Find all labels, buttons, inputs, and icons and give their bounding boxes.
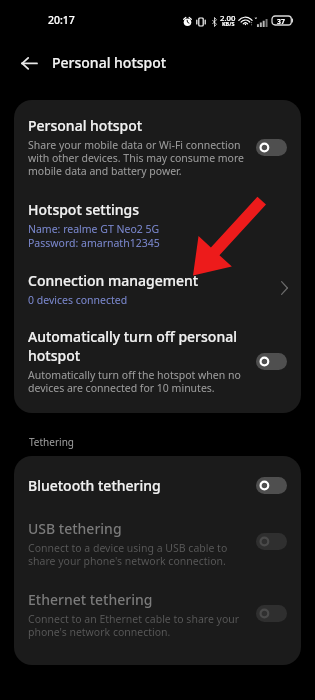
staticText: Connect to an Ethernet cable to share yo… [28, 612, 240, 639]
button[interactable] [14, 575, 301, 665]
button[interactable]: Toggle [256, 477, 287, 494]
button[interactable]: Toggle [256, 139, 287, 156]
staticText: Hotspot settings [28, 200, 140, 219]
other: Annotation arrow [0, 0, 315, 700]
staticText: Name: realme GT Neo2 5G Password: amarna… [28, 222, 160, 250]
button[interactable] [14, 100, 301, 188]
button[interactable] [14, 248, 301, 306]
button[interactable] [14, 456, 301, 505]
staticText: Bluetooth tethering [28, 476, 161, 495]
button[interactable]: Toggle [256, 533, 287, 550]
staticText: 2.00 [220, 13, 236, 24]
staticText: Ethernet tethering [28, 590, 153, 609]
staticText: KB/S [222, 20, 235, 27]
staticText: Automatically turn off the hotspot when … [28, 368, 241, 395]
staticText: Tethering [29, 435, 74, 449]
staticText: Personal hotspot [52, 53, 167, 72]
button[interactable]: Toggle [256, 353, 287, 370]
staticText: Automatically turn off personal hotspot [28, 327, 237, 365]
staticText: Personal hotspot [28, 116, 143, 135]
staticText: Connection management [28, 271, 199, 290]
button[interactable] [14, 306, 301, 413]
button[interactable]: Toggle [256, 605, 287, 622]
staticText: 20:17 [48, 13, 75, 27]
staticText: USB tethering [28, 519, 122, 538]
staticText: 37 [277, 17, 285, 26]
staticText: 0 devices connected [28, 293, 128, 307]
staticText: Connect to a device using a USB cable to… [28, 541, 228, 568]
button[interactable]: Back [10, 44, 48, 82]
button[interactable] [14, 505, 301, 575]
staticText: Share your mobile data or Wi-Fi connecti… [28, 138, 245, 178]
button[interactable] [14, 188, 301, 248]
